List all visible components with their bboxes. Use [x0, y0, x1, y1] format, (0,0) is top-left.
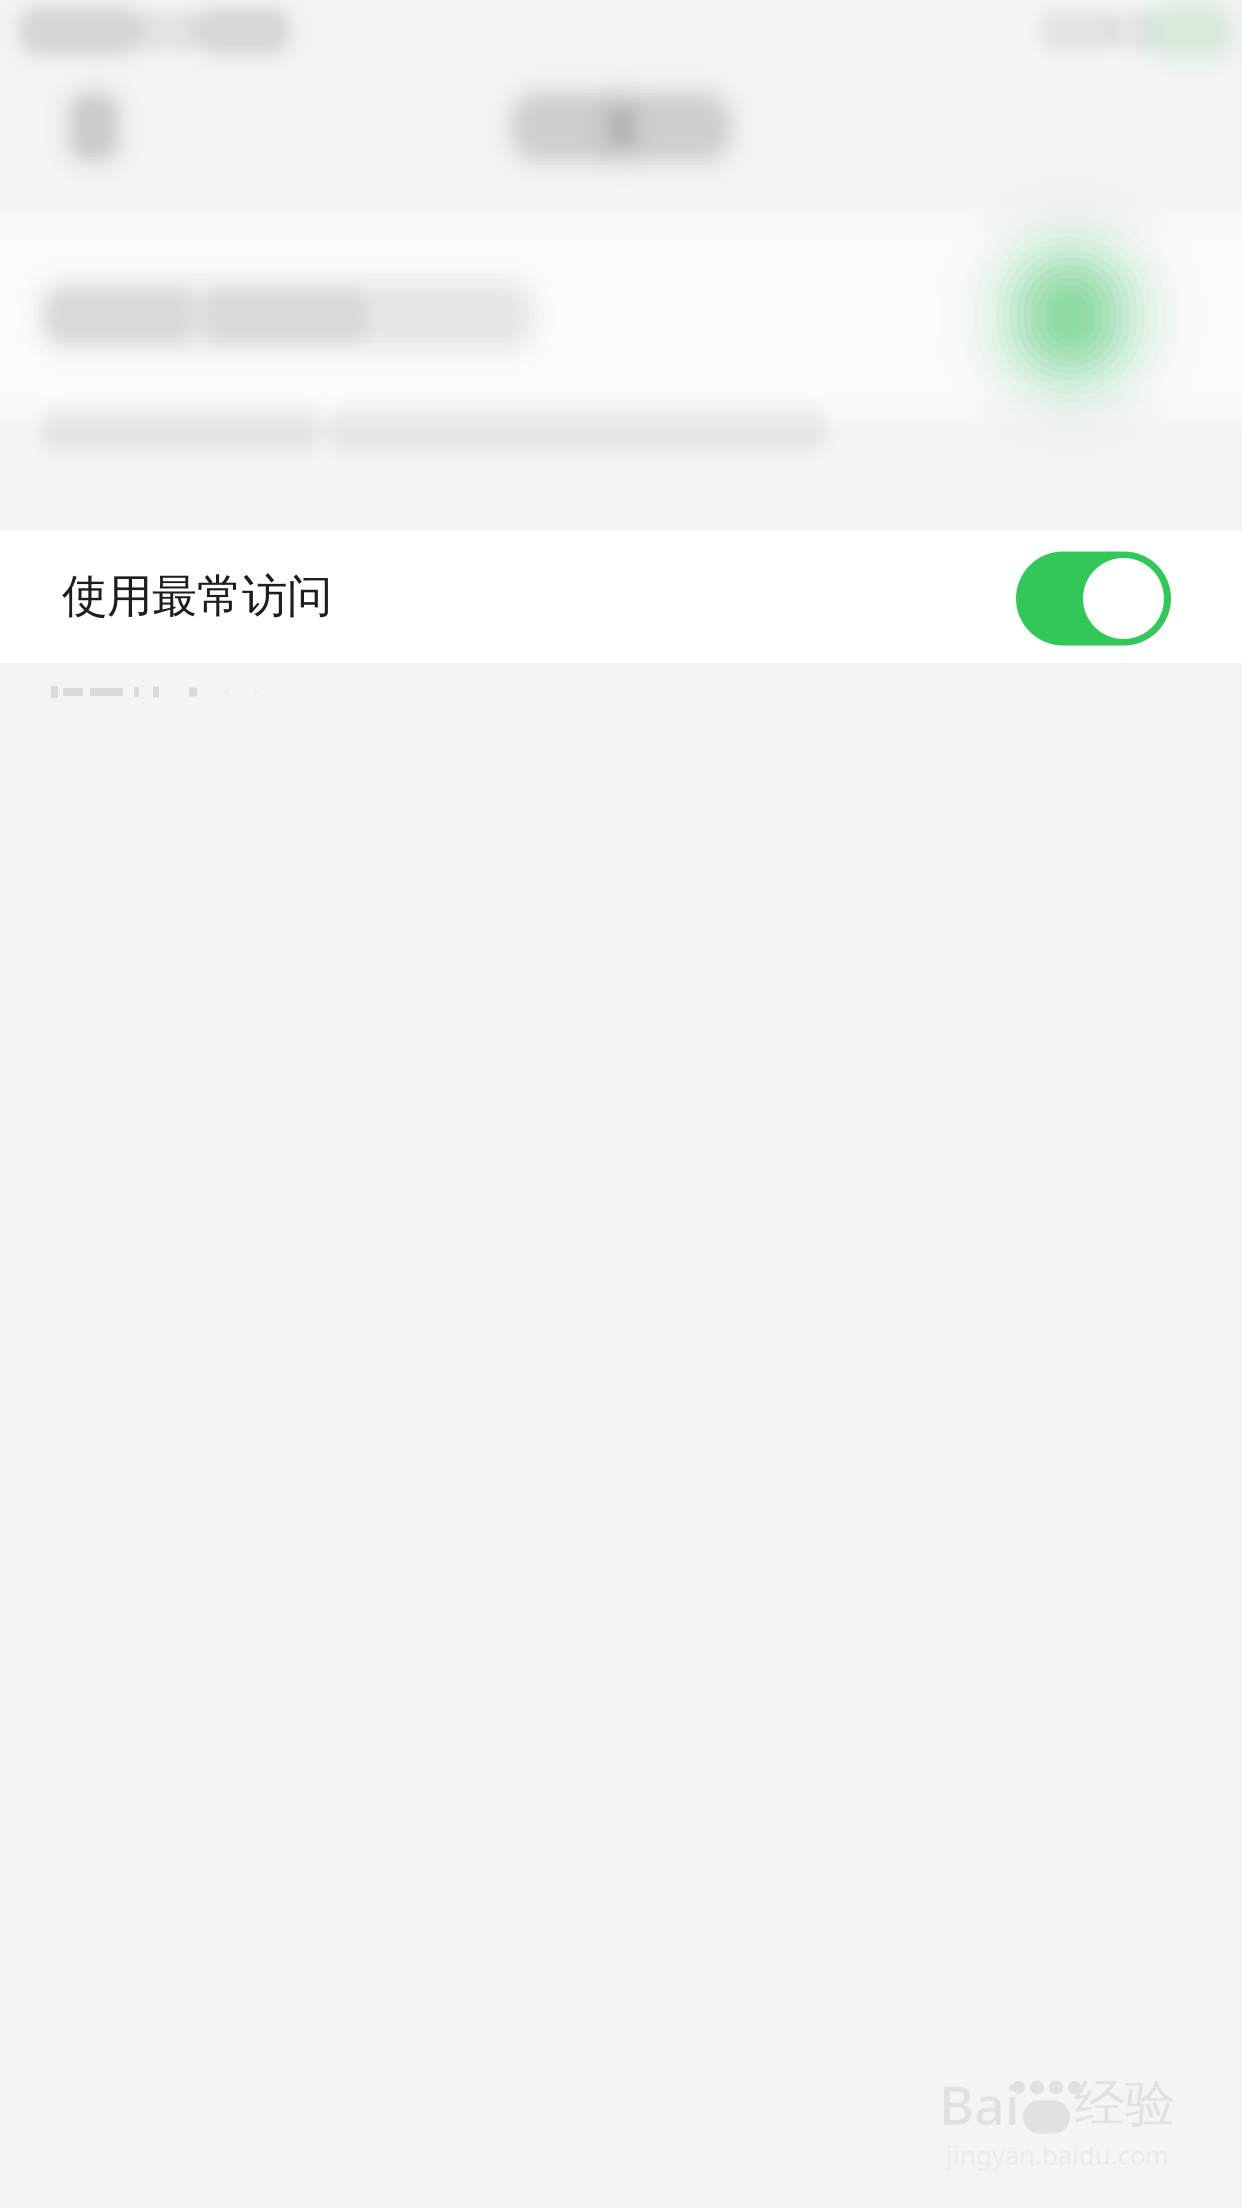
staticText: jingyan.baidu.com — [946, 2138, 1169, 2172]
staticText: Bai — [939, 2069, 1019, 2139]
button[interactable]: 使用最常访问 — [0, 530, 1242, 663]
staticText: 经验 — [1074, 2073, 1176, 2135]
staticText: 使用最常访问 — [62, 569, 332, 624]
